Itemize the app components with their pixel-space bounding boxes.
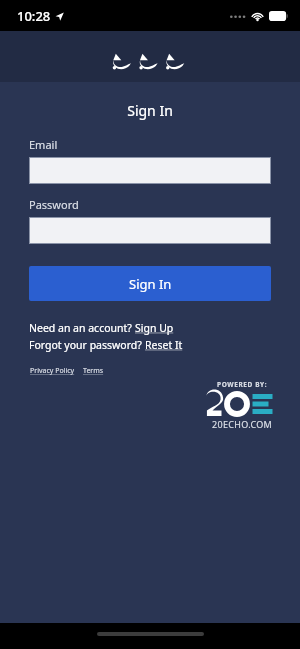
button[interactable]: Sign In	[29, 266, 271, 301]
staticText: Password	[29, 197, 79, 212]
button[interactable]: Sign Up	[135, 321, 174, 335]
button[interactable]: Terms	[83, 366, 104, 376]
staticText: Sign In	[0, 101, 300, 120]
staticText: Sign In	[129, 275, 172, 293]
button[interactable]: Reset It	[145, 338, 183, 352]
staticText: Email	[29, 137, 58, 152]
staticText: 10:28	[17, 7, 51, 25]
staticText: Privacy Policy	[30, 366, 75, 376]
staticText: 20ECHO.COM	[212, 418, 272, 430]
staticText: Terms	[83, 366, 104, 376]
staticText: Sign Up	[135, 321, 174, 335]
staticText: Reset It	[145, 338, 183, 352]
staticText: Need an an account?	[29, 321, 135, 335]
staticText: Forgot your password?	[29, 338, 145, 352]
staticText: POWERED BY:	[217, 380, 268, 389]
button[interactable]: Privacy Policy	[30, 366, 75, 376]
